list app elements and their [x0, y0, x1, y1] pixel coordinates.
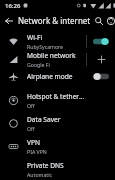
- staticText: 16:26: [5, 2, 21, 10]
- staticText: Wi-Fi: [27, 33, 43, 42]
- staticText: Automatic: [27, 171, 52, 178]
- staticText: Airplane mode: [27, 72, 73, 81]
- button[interactable]: Back: [0, 12, 18, 30]
- staticText: PIA VPN: [27, 148, 47, 155]
- button[interactable]: Add network: [94, 52, 108, 66]
- button[interactable]: Toggle off: [93, 72, 109, 81]
- staticText: VPN: [27, 138, 40, 147]
- staticText: Off: [27, 125, 35, 132]
- button[interactable]: Mobile network: [0, 50, 115, 68]
- button[interactable]: Hotspot & tethering: [0, 91, 115, 110]
- staticText: Network & internet: [18, 15, 91, 26]
- staticText: RubySycamore: [27, 43, 64, 50]
- button[interactable]: VPN: [0, 137, 115, 156]
- staticText: Google Fi: [27, 61, 50, 68]
- button[interactable]: Data Saver: [0, 114, 115, 133]
- staticText: Hotspot & tethering: [27, 92, 86, 101]
- button[interactable]: Wi-Fi: [0, 32, 115, 50]
- button[interactable]: Toggle on: [93, 37, 109, 46]
- staticText: Off: [27, 102, 35, 109]
- staticText: Data Saver: [27, 115, 61, 124]
- button[interactable]: Airplane mode: [0, 68, 115, 84]
- button[interactable]: Help: [107, 13, 115, 29]
- staticText: Private DNS: [27, 161, 64, 170]
- button[interactable]: Private DNS: [0, 160, 115, 179]
- staticText: Mobile network: [27, 51, 76, 60]
- button[interactable]: Search: [91, 13, 107, 29]
